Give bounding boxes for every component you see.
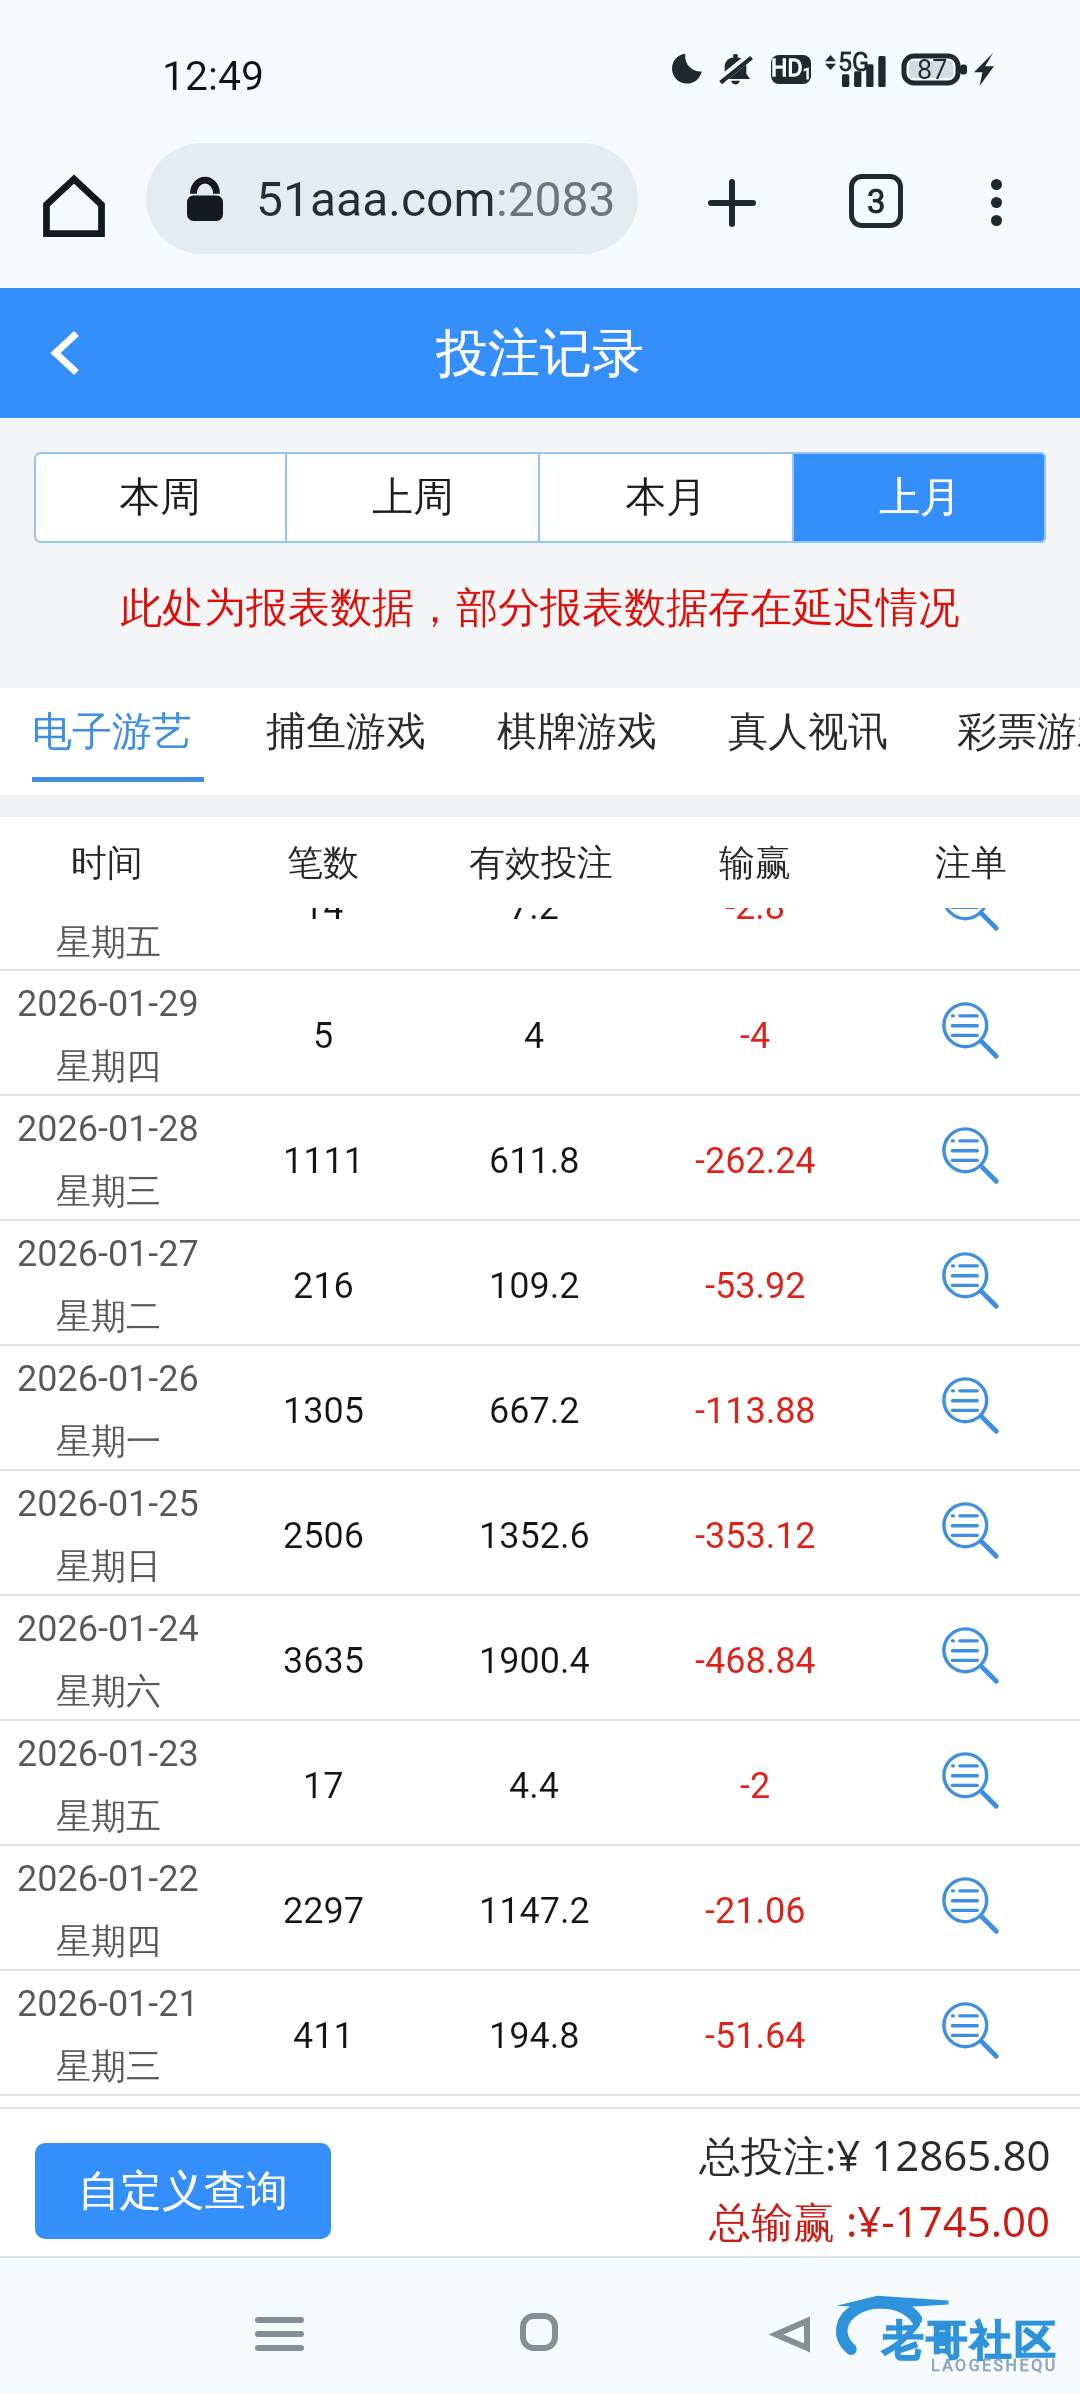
staticText: 2026-01-25 <box>17 1483 199 1525</box>
staticText: 2026-01-27 <box>17 1233 199 1275</box>
staticText: 2026-01-28 <box>17 1108 199 1150</box>
button[interactable]: 棋牌游戏 <box>497 688 669 795</box>
staticText: :2083 <box>496 171 616 227</box>
staticText: 7.2 <box>509 908 559 928</box>
button[interactable]: View bet details <box>859 1842 1079 1965</box>
button[interactable]: Back <box>743 2286 839 2382</box>
staticText: 输赢 <box>719 840 791 885</box>
staticText: -21.06 <box>705 1890 806 1932</box>
staticText: -113.88 <box>695 1390 816 1432</box>
staticText: 17 <box>303 1765 344 1807</box>
button[interactable]: View bet details <box>859 908 1079 931</box>
staticText: 星期一 <box>56 1419 161 1463</box>
staticText: 星期三 <box>56 1169 161 1213</box>
staticText: 51aaa.com <box>256 171 496 227</box>
button[interactable]: View bet details <box>859 1217 1079 1340</box>
staticText: 109.2 <box>489 1265 580 1307</box>
staticText: 411 <box>293 2015 354 2057</box>
staticText: -353.12 <box>695 1515 816 1557</box>
staticText: 12:49 <box>162 52 265 100</box>
staticText: HD <box>771 55 803 82</box>
staticText: 星期三 <box>56 2044 161 2088</box>
button[interactable]: 51aaa.com <box>146 143 638 254</box>
staticText: -53.92 <box>705 1265 806 1307</box>
button[interactable]: Recent apps <box>231 2286 327 2382</box>
staticText: -2 <box>740 1765 771 1807</box>
button[interactable]: 真人视讯 <box>728 688 900 795</box>
staticText: -262.24 <box>695 1140 816 1182</box>
button[interactable]: View bet details <box>859 1467 1079 1590</box>
button[interactable]: View bet details <box>859 1342 1079 1465</box>
button[interactable]: Home <box>24 167 123 245</box>
staticText: 捕鱼游戏 <box>266 706 426 756</box>
staticText: 本周 <box>119 472 201 524</box>
staticText: 彩票游戏 <box>957 706 1080 756</box>
button[interactable]: 电子游艺 <box>32 688 204 795</box>
staticText: 自定义查询 <box>78 2165 288 2218</box>
staticText: 棋牌游戏 <box>497 706 657 756</box>
staticText: 2026-01-22 <box>17 1858 199 1900</box>
button[interactable]: 彩票游戏 <box>957 688 1080 795</box>
staticText: 星期四 <box>56 1919 161 1963</box>
staticText: 1900.4 <box>479 1640 590 1682</box>
staticText: 有效投注 <box>469 840 613 885</box>
staticText: 注单 <box>935 840 1007 885</box>
staticText: 此处为报表数据，部分报表数据存在延迟情况 <box>0 582 1080 635</box>
staticText: 上月 <box>879 472 961 524</box>
staticText: 总输赢 :¥-1745.00 <box>709 2192 1051 2249</box>
staticText: 14 <box>303 908 344 928</box>
staticText: 星期五 <box>56 920 161 964</box>
staticText: 投注记录 <box>436 321 644 387</box>
staticText: LAOGESHEQU <box>931 2356 1058 2375</box>
staticText: 电子游艺 <box>32 706 192 756</box>
staticText: 老哥社区 <box>880 2316 1056 2368</box>
staticText: 真人视讯 <box>728 706 888 756</box>
staticText: 3 <box>867 182 886 221</box>
button[interactable]: More options <box>951 157 1041 247</box>
staticText: 5 <box>313 1015 334 1057</box>
staticText: -468.84 <box>695 1640 816 1682</box>
staticText: 时间 <box>71 840 143 885</box>
button[interactable]: View bet details <box>859 1967 1079 2090</box>
button[interactable]: 捕鱼游戏 <box>266 688 438 795</box>
button[interactable]: 上周 <box>287 452 538 543</box>
button[interactable]: View bet details <box>859 1092 1079 1215</box>
staticText: 2026-01-21 <box>17 1983 199 2025</box>
button[interactable]: 上月 <box>794 452 1046 543</box>
staticText: 4.4 <box>509 1765 559 1807</box>
staticText: 1352.6 <box>479 1515 590 1557</box>
staticText: 星期二 <box>56 1294 161 1338</box>
button[interactable]: New tab <box>687 158 777 248</box>
staticText: 星期六 <box>56 1669 161 1713</box>
staticText: 2506 <box>283 1515 364 1557</box>
staticText: 2026-01-23 <box>17 1733 199 1775</box>
staticText: 667.2 <box>489 1390 580 1432</box>
button[interactable]: Home <box>491 2284 587 2380</box>
staticText: 星期五 <box>56 1794 161 1838</box>
staticText: 星期日 <box>56 1544 161 1588</box>
button[interactable]: Tabs <box>831 156 921 246</box>
staticText: 3635 <box>283 1640 364 1682</box>
button[interactable]: View bet details <box>859 1717 1079 1840</box>
staticText: 总投注:¥ 12865.80 <box>699 2126 1051 2183</box>
staticText: 星期四 <box>56 1044 161 1088</box>
staticText: 611.8 <box>489 1140 580 1182</box>
button[interactable]: View bet details <box>859 967 1079 1090</box>
button[interactable]: 自定义查询 <box>35 2143 331 2239</box>
staticText: 上周 <box>372 472 454 524</box>
staticText: -2.8 <box>725 908 785 928</box>
button[interactable]: 本月 <box>540 452 792 543</box>
staticText: 216 <box>293 1265 354 1307</box>
staticText: 1111 <box>283 1140 364 1182</box>
button[interactable]: View bet details <box>859 1592 1079 1715</box>
staticText: 1 <box>803 65 811 83</box>
staticText: 2026-01-24 <box>17 1608 199 1650</box>
staticText: 本月 <box>625 472 707 524</box>
staticText: 2026-01-29 <box>17 983 199 1025</box>
button[interactable]: Back <box>26 313 106 393</box>
button[interactable]: 本周 <box>34 452 285 543</box>
staticText: 1305 <box>283 1390 364 1432</box>
staticText: 1147.2 <box>479 1890 590 1932</box>
staticText: 2297 <box>283 1890 364 1932</box>
staticText: 87 <box>917 54 948 85</box>
